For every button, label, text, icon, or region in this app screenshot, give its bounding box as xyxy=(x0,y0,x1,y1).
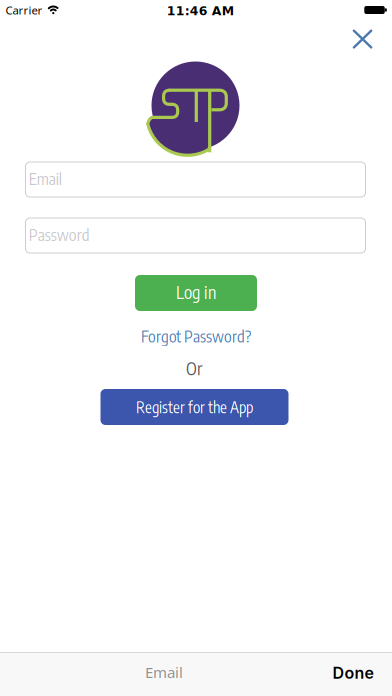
staticText: Carrier xyxy=(5,2,42,18)
staticText: 11:46 AM xyxy=(167,4,234,18)
staticText: Forgot Password? xyxy=(141,326,251,346)
staticText: Password xyxy=(29,224,90,245)
button[interactable]: Password xyxy=(25,217,366,253)
staticText: Register for the App xyxy=(136,397,253,417)
staticText: Email xyxy=(29,168,62,189)
button[interactable]: Done xyxy=(318,651,388,694)
button[interactable]: Register for the App xyxy=(100,389,288,425)
button[interactable]: Forgot Password? xyxy=(141,326,251,346)
button[interactable]: Email xyxy=(25,161,366,197)
staticText: Or xyxy=(186,357,202,379)
staticText: Log in xyxy=(176,281,216,303)
staticText: Done xyxy=(332,663,373,683)
button[interactable]: Log in xyxy=(135,275,257,311)
staticText: Email xyxy=(145,662,183,682)
button[interactable]: Close xyxy=(340,17,384,61)
